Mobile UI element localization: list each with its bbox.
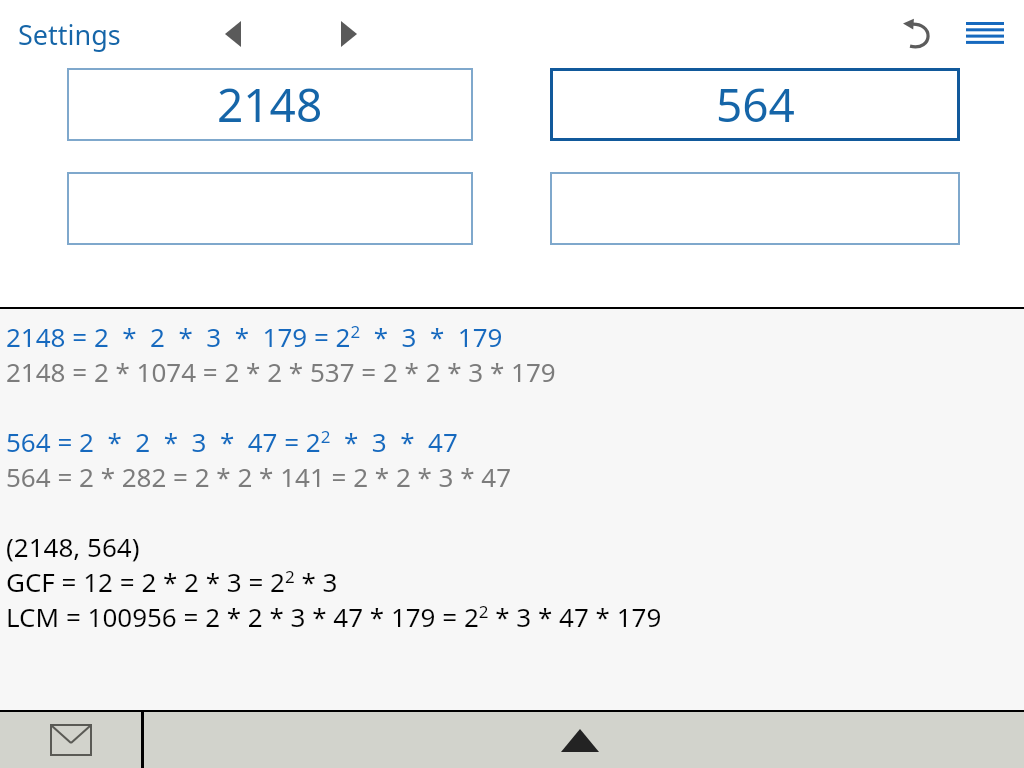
staticText: 2148 = 2 * 2 * 3 * 179 = 22 * 3 * 179	[6, 319, 503, 354]
staticText: 564 = 2 * 282 = 2 * 2 * 141 = 2 * 2 * 3 …	[6, 459, 512, 494]
staticText: (2148, 564)	[6, 529, 140, 564]
button[interactable]: Previous	[206, 7, 260, 61]
staticText: 2148 = 2 * 1074 = 2 * 2 * 537 = 2 * 2 * …	[6, 354, 556, 389]
staticText: 2148	[217, 73, 323, 136]
button[interactable]: Expand	[552, 712, 608, 768]
button[interactable]	[67, 172, 473, 245]
button[interactable]: Next	[322, 7, 376, 61]
button[interactable]: Mail	[0, 712, 141, 768]
button[interactable]: Settings	[10, 10, 129, 59]
staticText: 564	[716, 73, 795, 136]
staticText: 564 = 2 * 2 * 3 * 47 = 22 * 3 * 47	[6, 424, 458, 459]
staticText: Settings	[18, 16, 121, 53]
button[interactable]	[550, 172, 960, 245]
staticText: LCM = 100956 = 2 * 2 * 3 * 47 * 179 = 22…	[6, 599, 662, 634]
button[interactable]: 564	[550, 68, 960, 141]
button[interactable]: Undo	[892, 7, 946, 61]
button[interactable]: Menu	[958, 7, 1012, 61]
staticText: GCF = 12 = 2 * 2 * 3 = 22 * 3	[6, 564, 338, 599]
button[interactable]: 2148	[67, 68, 473, 141]
